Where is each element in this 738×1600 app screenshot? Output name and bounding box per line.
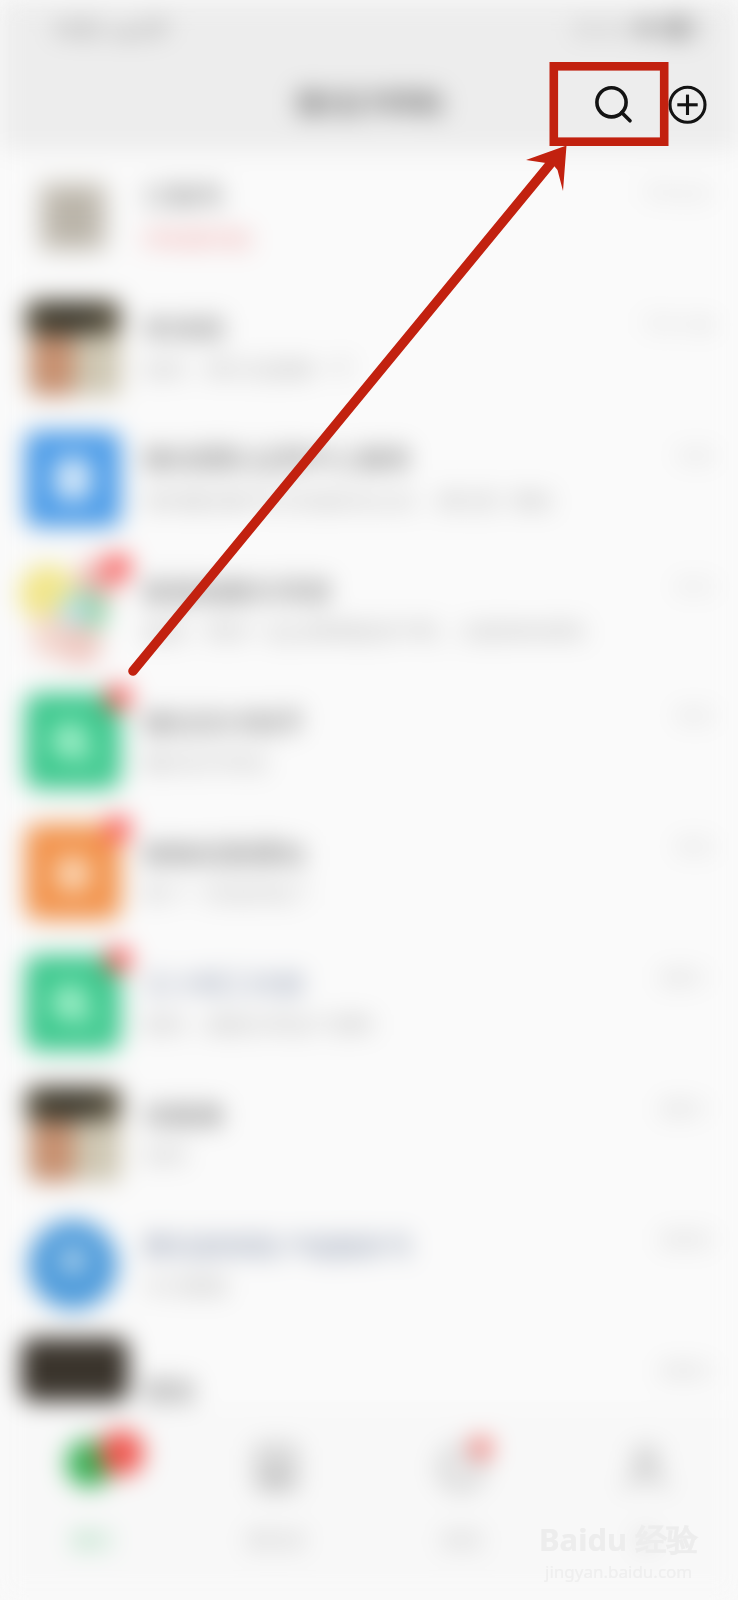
staticText: 微信支付助手 (143, 706, 305, 740)
staticText: 微信(1058) (295, 81, 443, 122)
button[interactable]: 张晓琳 (0, 1068, 738, 1199)
staticText: 家庭相册共享群 (143, 575, 332, 609)
button[interactable]: Add (666, 73, 710, 137)
button[interactable]: 朋友 (0, 1330, 738, 1461)
button[interactable]: 家庭相册共享群 (0, 544, 738, 675)
button[interactable]: 微信支付助手 (0, 675, 738, 806)
button[interactable]: 我 (553, 1410, 738, 1600)
staticText: 购物优惠通知 (143, 837, 305, 871)
staticText: 张晓琳 (143, 1099, 224, 1133)
button[interactable]: 订阅号 (0, 151, 738, 282)
staticText: 朋友 (143, 1374, 197, 1408)
staticText: 好的，明天见面聊一下 (143, 357, 353, 383)
button[interactable]: 王小明工作群 (0, 937, 738, 1068)
staticText: Baidu 经验 (539, 1518, 698, 1560)
button[interactable]: 微信 (0, 1410, 184, 1600)
staticText: 订阅号 (143, 180, 224, 214)
button[interactable]: 腾讯新闻客户端服务号 (0, 1199, 738, 1330)
button[interactable]: 李伟明 (0, 282, 738, 413)
staticText: 妈妈：周末一起去看看新房子吧，大家有时间吗 (143, 619, 584, 645)
button[interactable]: 微信团队运营中心服务 (0, 413, 738, 544)
staticText: 王小明工作群 (143, 968, 305, 1002)
staticText: 微信 (72, 1528, 112, 1553)
staticText: 你的微信账号已完成实名认证，请注意 查收 (143, 486, 553, 515)
staticText: 微信团队运营中心服务 (143, 442, 413, 476)
staticText: 腾讯新闻客户端服务号 (143, 1230, 413, 1264)
button[interactable]: Search (549, 62, 669, 146)
staticText: jingyan.baidu.com (545, 1560, 693, 1583)
button[interactable]: 发现 (368, 1410, 553, 1600)
button[interactable]: 通讯录 (184, 1410, 368, 1600)
staticText: [9条]新消息 (143, 224, 253, 253)
staticText: 李伟明 (143, 313, 224, 347)
button[interactable]: 购物优惠通知 (0, 806, 738, 937)
